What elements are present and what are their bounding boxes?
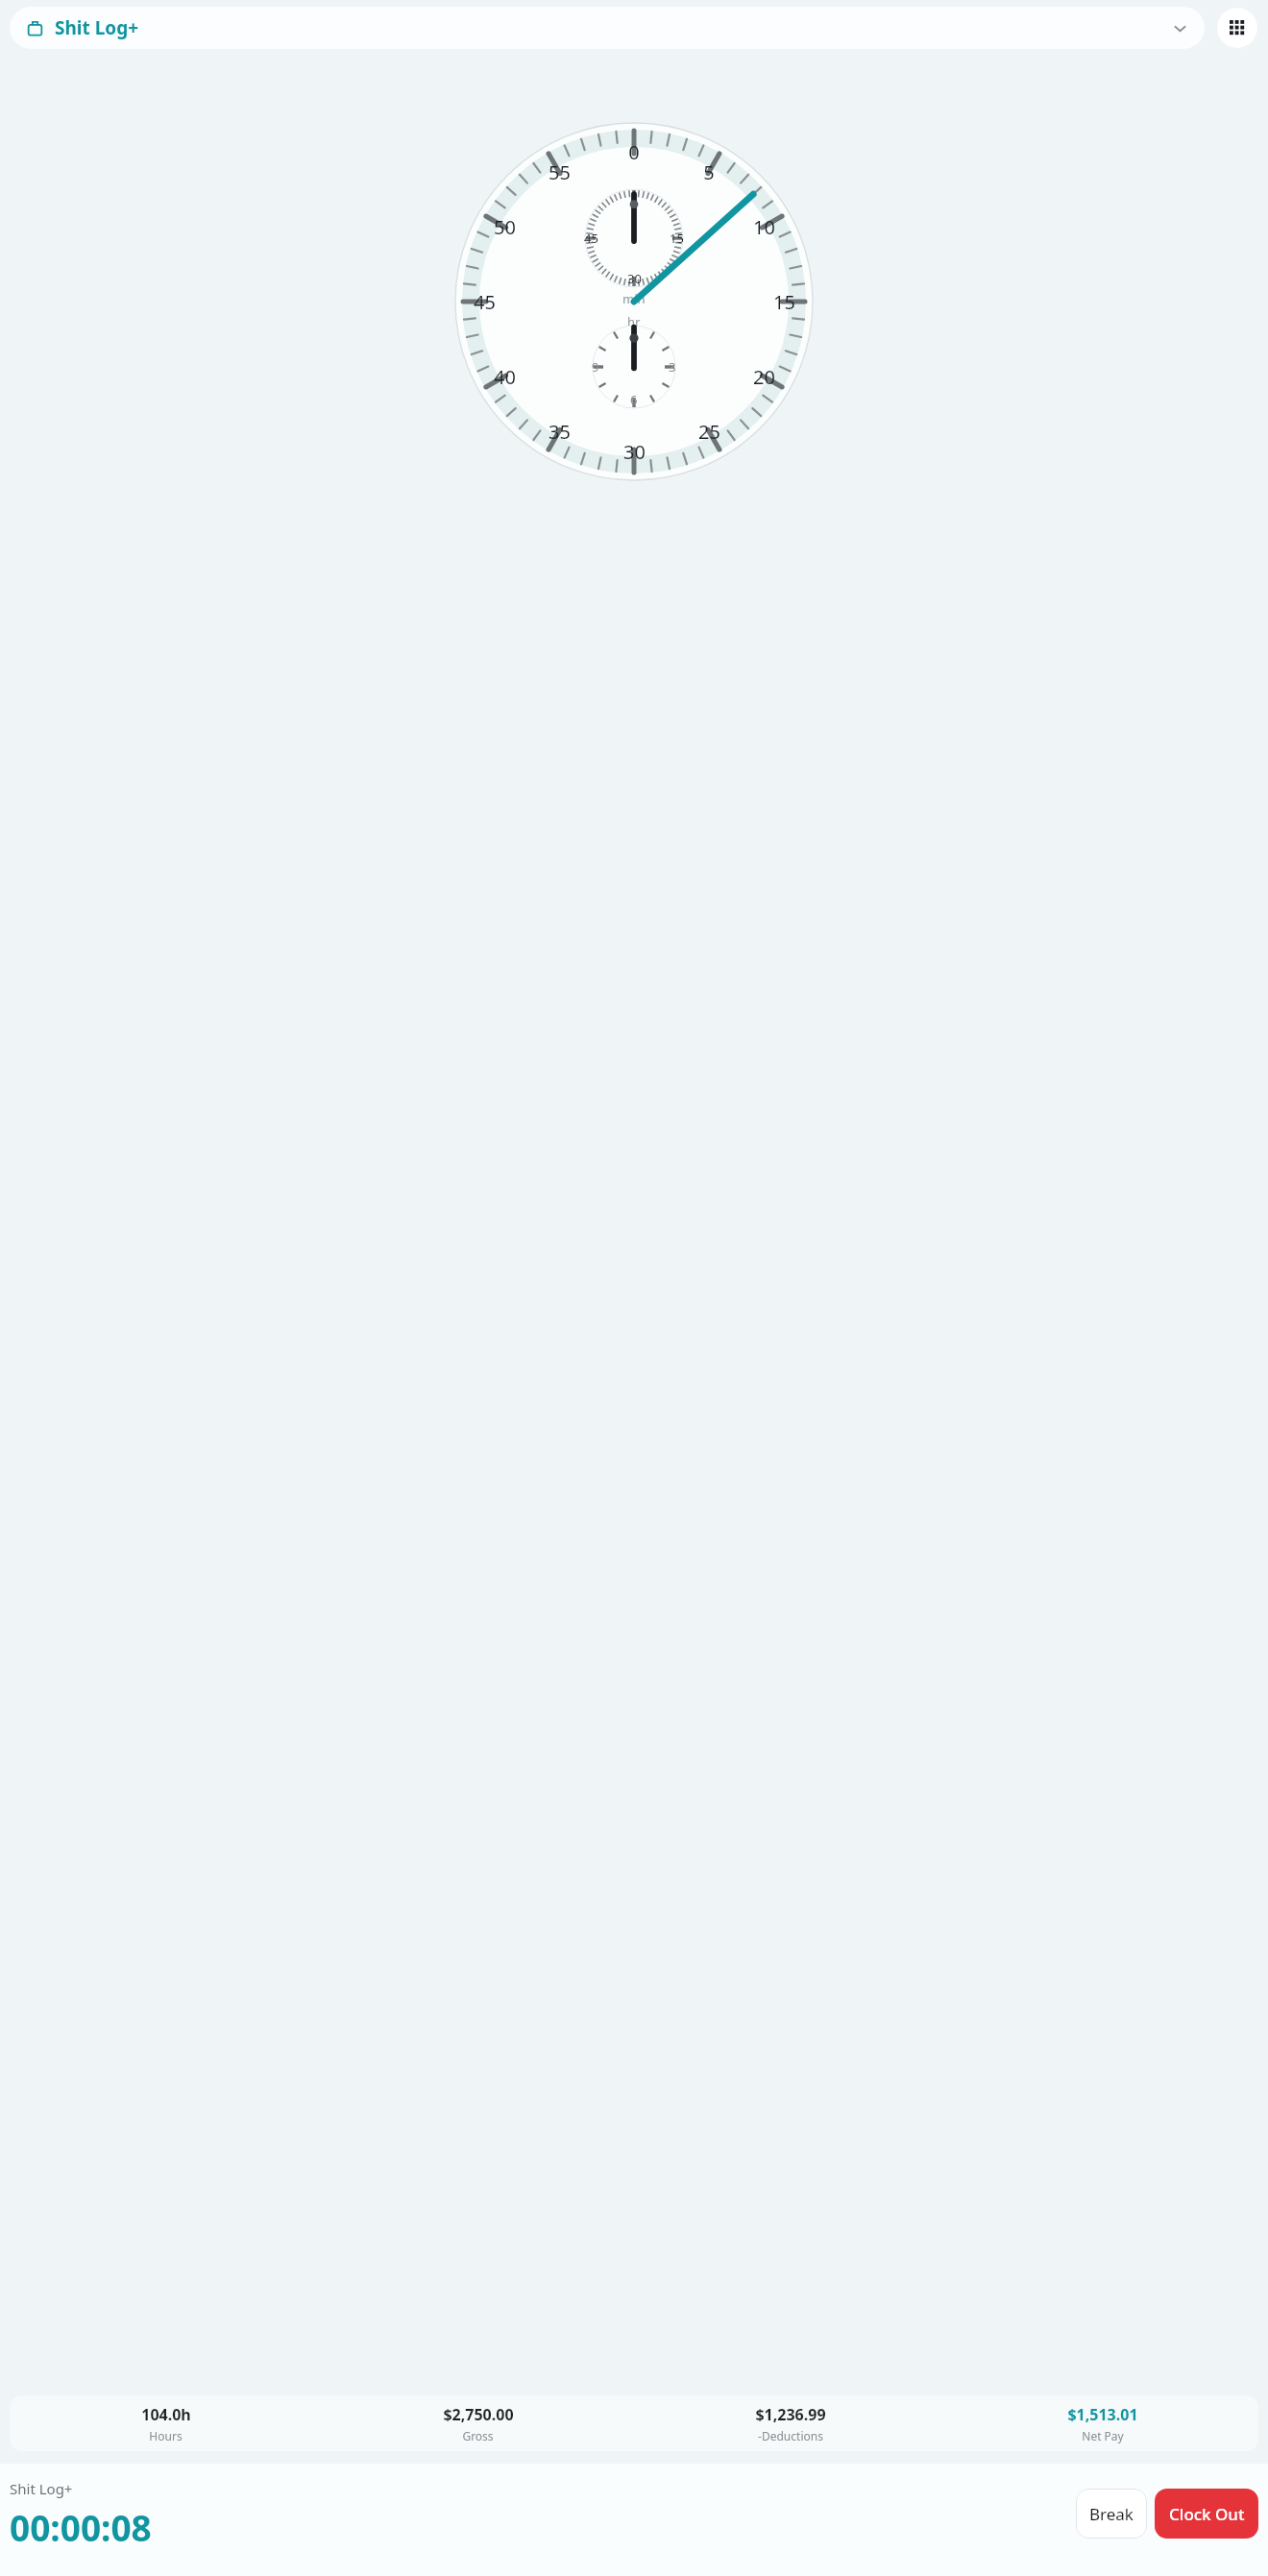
button[interactable]: Clock Out (1155, 2489, 1258, 2539)
staticText: $1,236.99 (755, 2404, 826, 2425)
button[interactable]: Shit Log+ (10, 7, 1205, 49)
staticText: 45 (474, 289, 496, 315)
staticText: $1,513.01 (1067, 2404, 1138, 2425)
staticText: 10 (753, 214, 775, 240)
staticText: 25 (698, 419, 720, 445)
staticText: hr (627, 313, 641, 330)
staticText: 5 (703, 159, 715, 185)
button[interactable]: Apps menu (1216, 7, 1258, 49)
staticText: 30 (623, 439, 646, 465)
button[interactable]: Break (1076, 2489, 1147, 2539)
staticText: min (622, 290, 646, 307)
staticText: 15 (670, 230, 684, 247)
staticText: 30 (627, 270, 642, 287)
staticText: Shit Log+ (10, 2479, 73, 2498)
staticText: Clock Out (1169, 2503, 1245, 2525)
staticText: 55 (549, 159, 571, 185)
staticText: 3 (669, 358, 676, 376)
staticText: 00:00:08 (10, 2503, 152, 2551)
staticText: 15 (773, 289, 795, 315)
staticText: Gross (462, 2428, 494, 2443)
staticText: Break (1089, 2503, 1134, 2525)
staticText: 6 (630, 391, 638, 408)
staticText: 0 (628, 139, 640, 165)
button[interactable]: 104.0h (10, 2395, 1258, 2451)
staticText: 40 (494, 364, 516, 390)
staticText: $2,750.00 (443, 2404, 514, 2425)
staticText: Hours (149, 2428, 183, 2443)
staticText: Shit Log+ (55, 15, 139, 40)
staticText: 104.0h (141, 2404, 191, 2425)
staticText: -Deductions (758, 2428, 823, 2443)
staticText: Net Pay (1082, 2428, 1124, 2443)
staticText: 45 (584, 230, 598, 247)
staticText: 35 (549, 419, 571, 445)
staticText: 50 (494, 214, 516, 240)
staticText: 9 (592, 358, 599, 376)
staticText: 20 (753, 364, 775, 390)
